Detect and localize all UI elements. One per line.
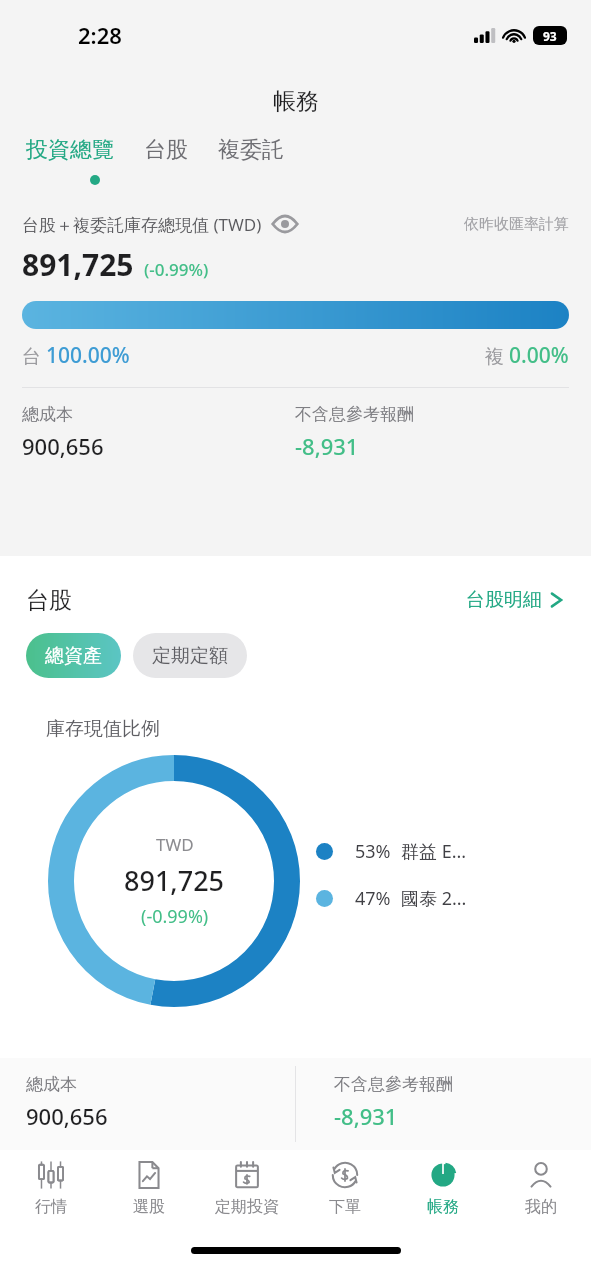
button[interactable]: 選股 [101,1158,196,1230]
staticText: -8,931 [295,431,359,461]
staticText: 總成本 [26,1074,77,1095]
staticText: 複 [485,343,509,369]
staticText: 891,725 [124,862,225,899]
button[interactable]: 投資總覽 [26,132,114,168]
button[interactable]: Toggle visibility [270,212,300,236]
button[interactable]: 定期投資 [199,1158,294,1230]
staticText: 台 [22,343,46,369]
staticText: 台股明細 [466,588,542,612]
staticText: 行情 [35,1197,67,1217]
button[interactable]: 定期定額 [133,633,247,678]
staticText: 我的 [525,1197,557,1217]
staticText: TWD [156,833,194,856]
staticText: 891,725 [22,244,134,285]
staticText: (-0.99%) [141,904,209,929]
staticText: 依昨收匯率計算 [464,215,569,234]
button[interactable]: 我的 [493,1158,588,1230]
button[interactable]: 複委託 [218,132,284,168]
staticText: 900,656 [22,431,104,461]
staticText: 900,656 [26,1101,108,1131]
staticText: 投資總覽 [26,136,114,164]
staticText: 群益 E... [401,839,467,864]
button[interactable]: 台股明細 [464,582,565,618]
button[interactable]: 帳務 [395,1158,490,1230]
staticText: 47% [355,886,391,911]
staticText: 國泰 2... [401,886,467,911]
staticText: 台股 [26,586,72,615]
staticText: 台股 [144,136,188,164]
staticText: 定期投資 [215,1197,279,1217]
staticText: 下單 [329,1197,361,1217]
button[interactable]: 庫存現值比例 [22,695,569,1050]
staticText: 帳務 [273,87,319,116]
staticText: 帳務 [427,1197,459,1217]
staticText: 定期定額 [152,644,228,668]
button[interactable]: 台股 [144,132,188,168]
staticText: 不含息參考報酬 [295,404,414,425]
button[interactable]: 行情 [3,1158,98,1230]
staticText: 台股＋複委託庫存總現值 (TWD) [22,213,262,236]
button[interactable]: 下單 [297,1158,392,1230]
staticText: 0.00% [509,341,569,370]
staticText: 總成本 [22,404,73,425]
staticText: -8,931 [334,1101,398,1131]
staticText: 不含息參考報酬 [334,1074,453,1095]
staticText: 2:28 [78,20,122,50]
staticText: 93 [543,28,557,44]
staticText: 總資產 [45,644,102,668]
staticText: 選股 [133,1197,165,1217]
staticText: 53% [355,839,391,864]
staticText: 100.00% [46,341,130,370]
staticText: 複委託 [218,136,284,164]
button[interactable]: 總資產 [26,633,121,678]
staticText: 庫存現值比例 [46,717,160,741]
staticText: (-0.99%) [144,258,209,281]
